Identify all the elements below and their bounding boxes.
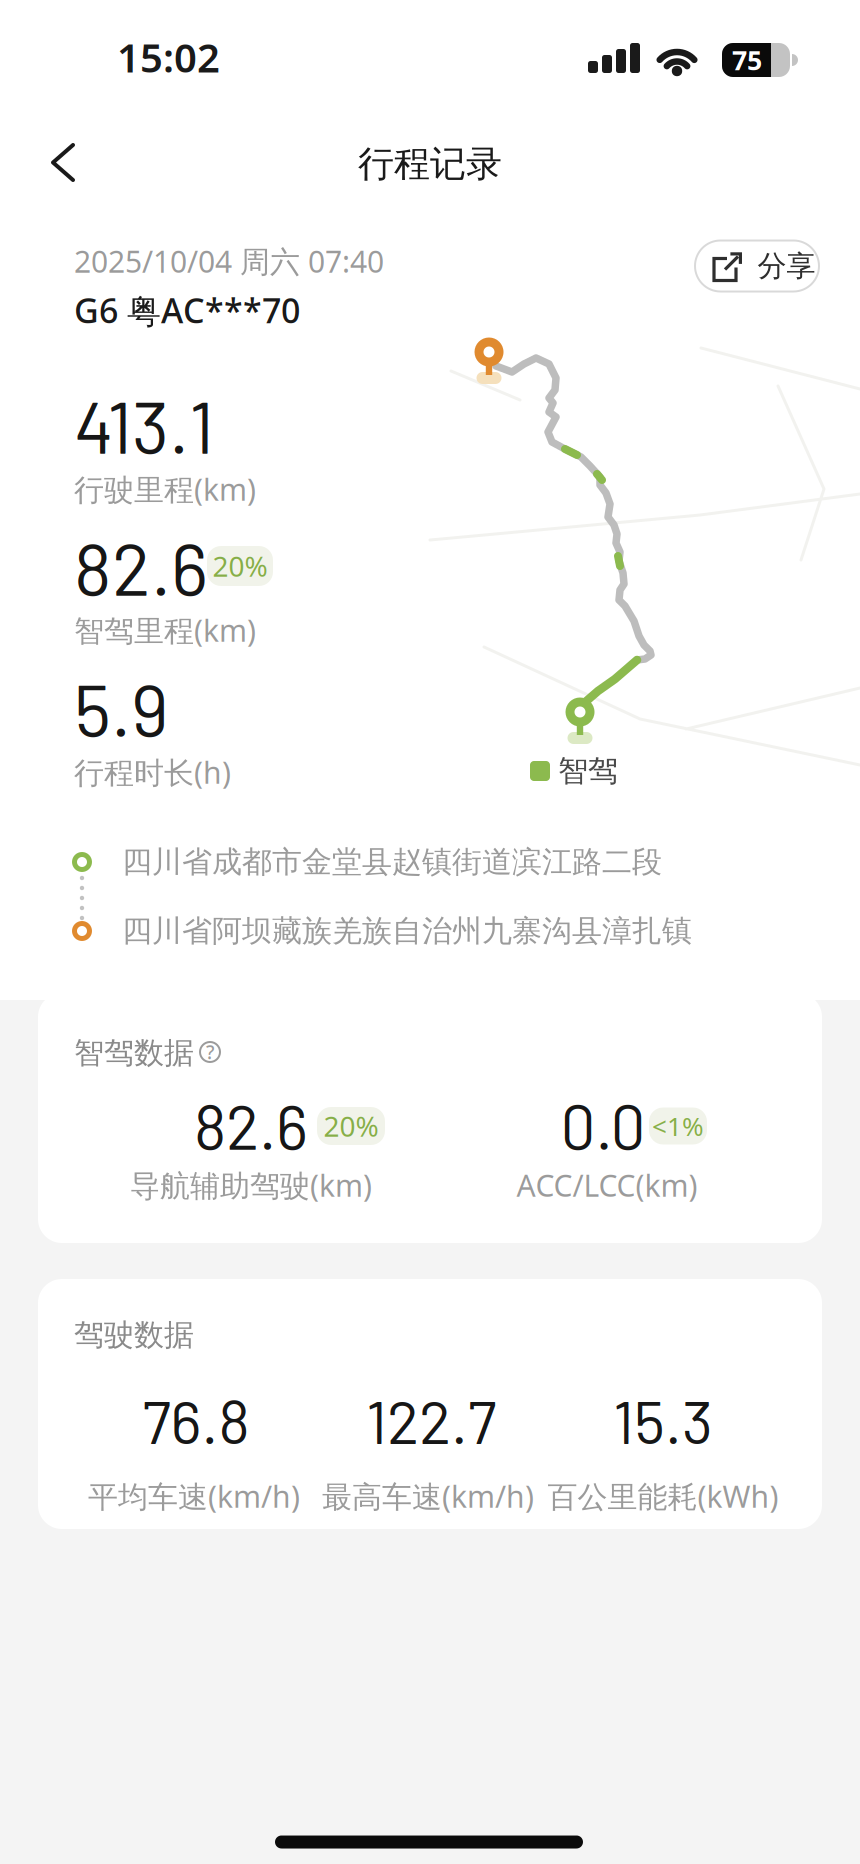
staticText: 分享 xyxy=(757,248,815,284)
staticText: 行程记录 xyxy=(358,141,502,187)
staticText: 15.3 xyxy=(613,1384,713,1456)
staticText: 四川省阿坝藏族羌族自治州九寨沟县漳扎镇 xyxy=(122,912,692,950)
staticText: 20% xyxy=(323,1107,378,1145)
staticText: 导航辅助驾驶(km) xyxy=(130,1165,372,1205)
staticText: 413.1 xyxy=(74,382,214,468)
staticText: 智驾数据 xyxy=(74,1034,194,1072)
staticText: 行驶里程(km) xyxy=(74,469,256,509)
staticText: 平均车速(km/h) xyxy=(88,1476,300,1516)
staticText: 四川省成都市金堂县赵镇街道滨江路二段 xyxy=(122,843,662,881)
staticText: 75 xyxy=(732,42,762,78)
staticText: 智驾里程(km) xyxy=(74,610,256,650)
staticText: 行程时长(h) xyxy=(74,752,231,792)
staticText: ACC/LCC(km) xyxy=(516,1165,697,1205)
button[interactable]: 分享 xyxy=(694,239,820,292)
staticText: 百公里能耗(kWh) xyxy=(547,1476,778,1516)
staticText: 最高车速(km/h) xyxy=(322,1476,534,1516)
staticText: G6 粤AC***70 xyxy=(74,287,300,333)
staticText: 15:02 xyxy=(117,30,220,83)
staticText: 0.0 xyxy=(560,1088,645,1162)
staticText: 20% xyxy=(212,547,267,585)
staticText: 5.9 xyxy=(74,665,169,751)
staticText: 82.6 xyxy=(194,1088,308,1162)
staticText: 驾驶数据 xyxy=(74,1316,194,1354)
staticText: 76.8 xyxy=(142,1384,249,1456)
staticText: ? xyxy=(206,1039,214,1065)
button[interactable]: Back xyxy=(0,127,90,199)
staticText: 82.6 xyxy=(74,524,208,610)
button[interactable]: 智驾数据说明 xyxy=(195,1037,225,1067)
staticText: 122.7 xyxy=(366,1384,496,1456)
staticText: 2025/10/04 周六 07:40 xyxy=(74,241,384,281)
staticText: 智驾 xyxy=(558,752,618,790)
staticText: <1% xyxy=(652,1108,704,1144)
